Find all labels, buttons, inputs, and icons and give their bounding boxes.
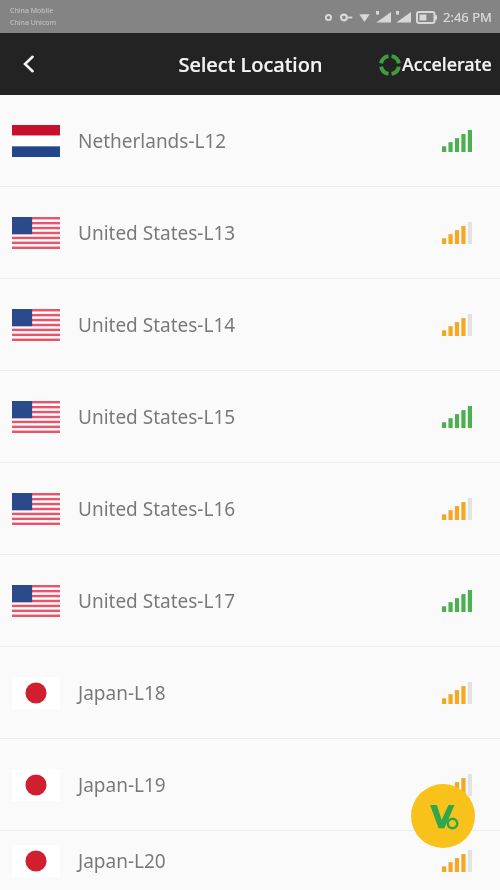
staticText: Accelerate [402,52,492,77]
button[interactable]: Japan-L20 [0,831,500,890]
staticText: United States-L13 [78,220,236,246]
button[interactable]: Japan-L19 [0,739,500,830]
staticText: United States-L16 [78,496,236,522]
staticText: China Mobile [10,6,54,16]
staticText: Select Location [178,51,323,78]
staticText: Japan-L20 [78,848,166,874]
staticText: Netherlands-L12 [78,128,227,154]
button[interactable]: Back [0,35,58,93]
staticText: Japan-L19 [78,772,166,798]
staticText: 2:46 PM [443,8,492,26]
button[interactable]: United States-L15 [0,371,500,462]
button[interactable]: United States-L13 [0,187,500,278]
staticText: United States-L15 [78,404,236,430]
staticText: Japan-L18 [78,680,166,706]
staticText: United States-L14 [78,312,236,338]
staticText: United States-L17 [78,588,236,614]
button[interactable]: United States-L16 [0,463,500,554]
button[interactable]: Japan-L18 [0,647,500,738]
button[interactable]: Netherlands-L12 [0,95,500,186]
button[interactable]: United States-L17 [0,555,500,646]
button[interactable]: United States-L14 [0,279,500,370]
staticText: China Unicom [10,18,57,28]
button[interactable]: VPN connect [411,784,475,848]
button[interactable]: Accelerate [375,46,496,83]
